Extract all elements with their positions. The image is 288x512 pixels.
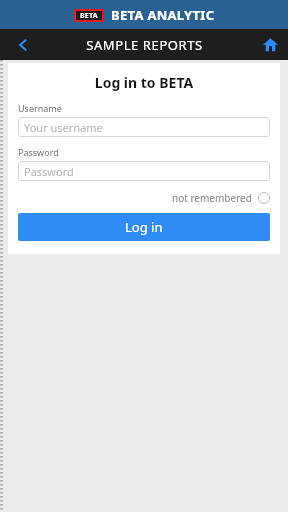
staticText: not remembered xyxy=(172,191,252,205)
button[interactable]: Log in xyxy=(18,213,270,241)
button[interactable]: Password xyxy=(18,161,270,181)
button[interactable]: Back xyxy=(0,29,46,60)
staticText: Password xyxy=(18,146,59,158)
button[interactable]: Your username xyxy=(18,117,270,137)
button[interactable]: not remembered xyxy=(172,189,270,207)
staticText: BETA ANALYTIC xyxy=(111,6,215,24)
staticText: SAMPLE REPORTS xyxy=(86,36,203,54)
button[interactable]: BETA xyxy=(74,6,215,24)
staticText: Password xyxy=(24,164,74,179)
staticText: Log in to BETA xyxy=(18,73,270,92)
staticText: Log in xyxy=(125,218,163,236)
staticText: BETA xyxy=(80,11,98,20)
staticText: Your username xyxy=(24,120,103,135)
staticText: Username xyxy=(18,102,62,114)
button[interactable]: Home xyxy=(252,29,288,60)
